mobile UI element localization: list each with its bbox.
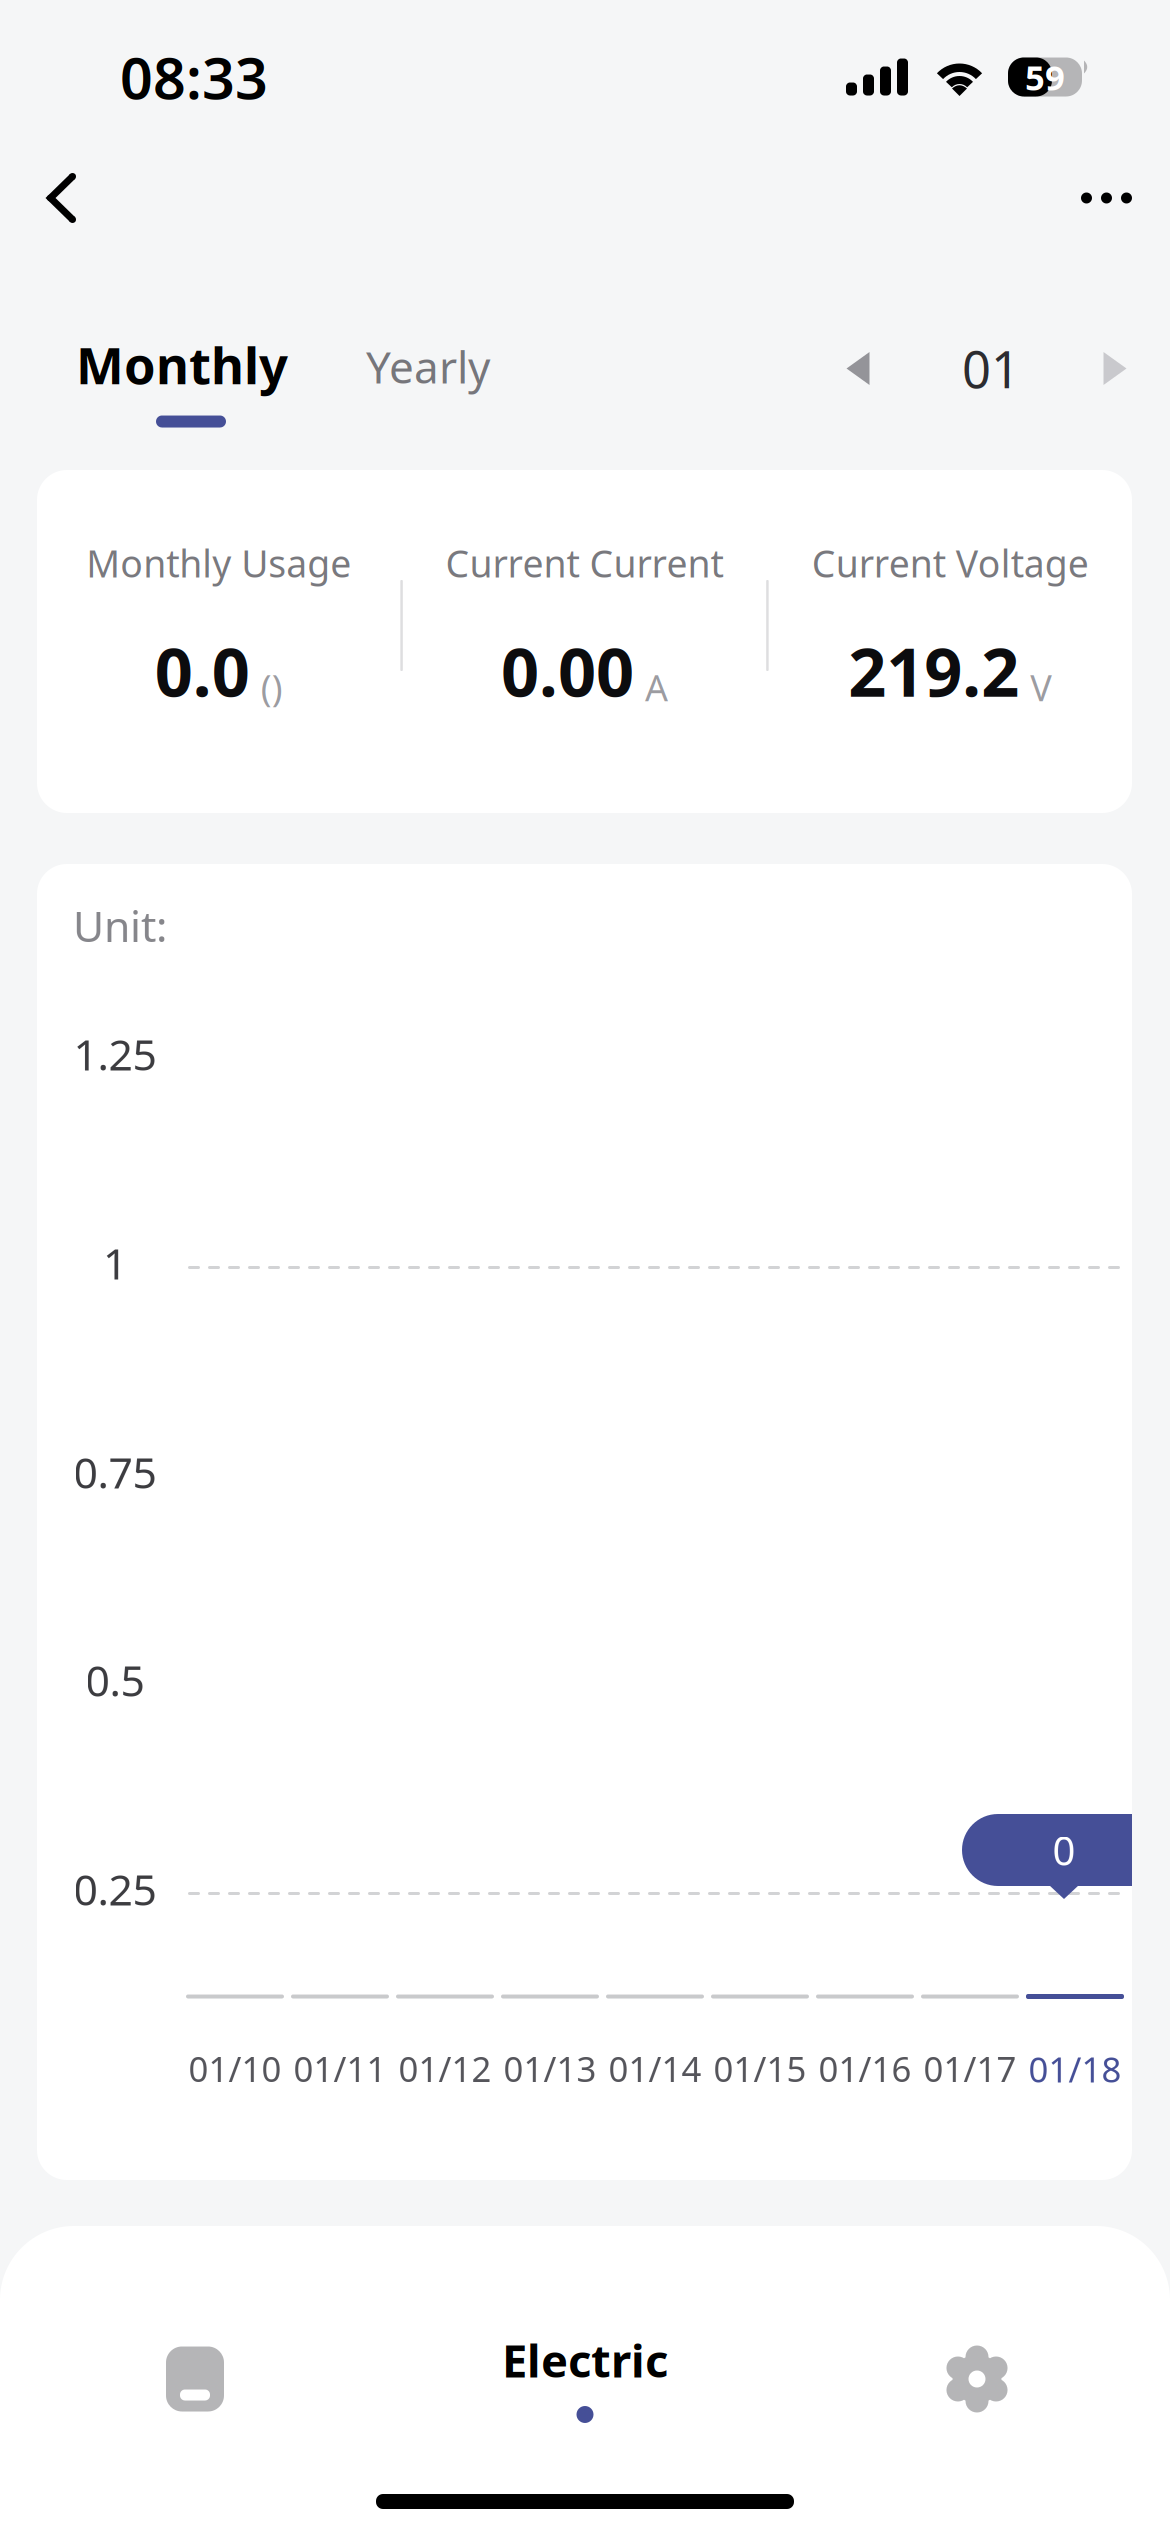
button[interactable]: Electric [455,2336,715,2454]
staticText: () [261,663,283,711]
button[interactable]: Yearly [366,338,506,394]
staticText: 01/18 [1028,2046,1121,2092]
button[interactable]: Monthly [76,336,306,427]
staticText: 0.5 [85,1652,144,1708]
staticText: 08:33 [120,39,268,115]
staticText: 01 [962,335,1020,402]
staticText: 01/14 [608,2045,701,2091]
staticText: 0 [1052,1823,1075,1876]
staticText: Yearly [366,337,490,396]
staticText: Monthly Usage [86,538,351,588]
staticText: A [645,663,668,711]
button[interactable]: More options [1036,150,1132,246]
staticText: 59 [1025,54,1065,100]
staticText: 01/13 [503,2045,596,2091]
button[interactable]: Back [47,150,143,246]
staticText: 01/16 [818,2045,911,2091]
button[interactable]: Settings [913,2320,1041,2438]
staticText: 0.00 [501,627,634,715]
button[interactable]: Previous month [823,339,893,397]
button[interactable]: Device [131,2320,259,2438]
staticText: Current Current [445,538,723,588]
staticText: V [1030,663,1052,711]
staticText: 1 [103,1235,127,1291]
staticText: 1.25 [73,1026,156,1082]
staticText: 01/11 [293,2045,386,2091]
staticText: 0.0 [155,627,250,715]
staticText: Current Voltage [812,538,1089,588]
staticText: 0.25 [73,1861,156,1917]
staticText: 01/10 [188,2045,281,2091]
staticText: Monthly [76,331,288,398]
button[interactable]: Next month [1080,339,1150,397]
staticText: 01/17 [923,2045,1016,2091]
staticText: 0.75 [73,1444,156,1500]
staticText: Unit: [73,897,167,954]
staticText: 01/12 [398,2045,491,2091]
staticText: 01/15 [713,2045,806,2091]
staticText: 219.2 [848,627,1019,715]
staticText: Electric [502,2330,668,2390]
